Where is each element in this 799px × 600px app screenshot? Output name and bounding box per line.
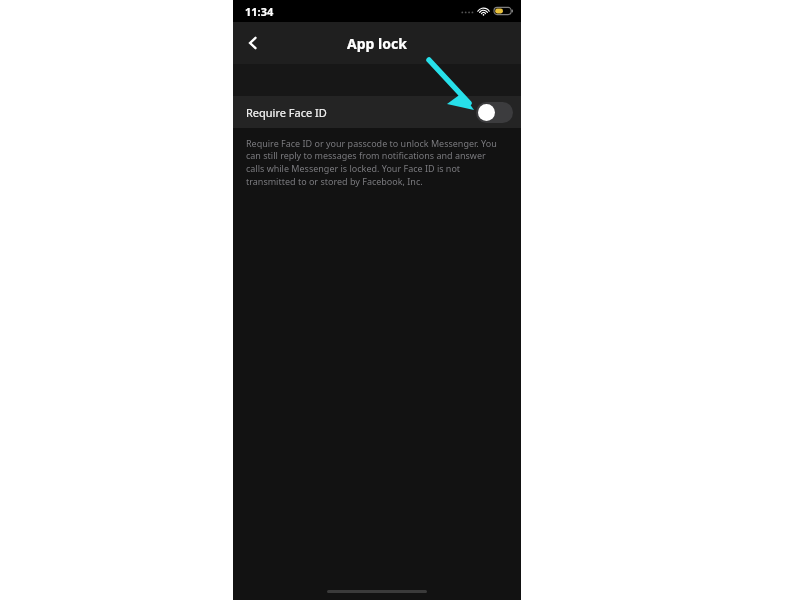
button[interactable]: Require Face ID toggle, off — [476, 102, 513, 123]
button[interactable]: Require Face ID — [233, 96, 521, 128]
staticText: 11:34 — [245, 4, 274, 19]
button[interactable]: Back — [233, 23, 273, 63]
staticText: Require Face ID or your passcode to unlo… — [246, 137, 503, 188]
staticText: App lock — [347, 34, 407, 53]
staticText: Require Face ID — [246, 105, 327, 120]
